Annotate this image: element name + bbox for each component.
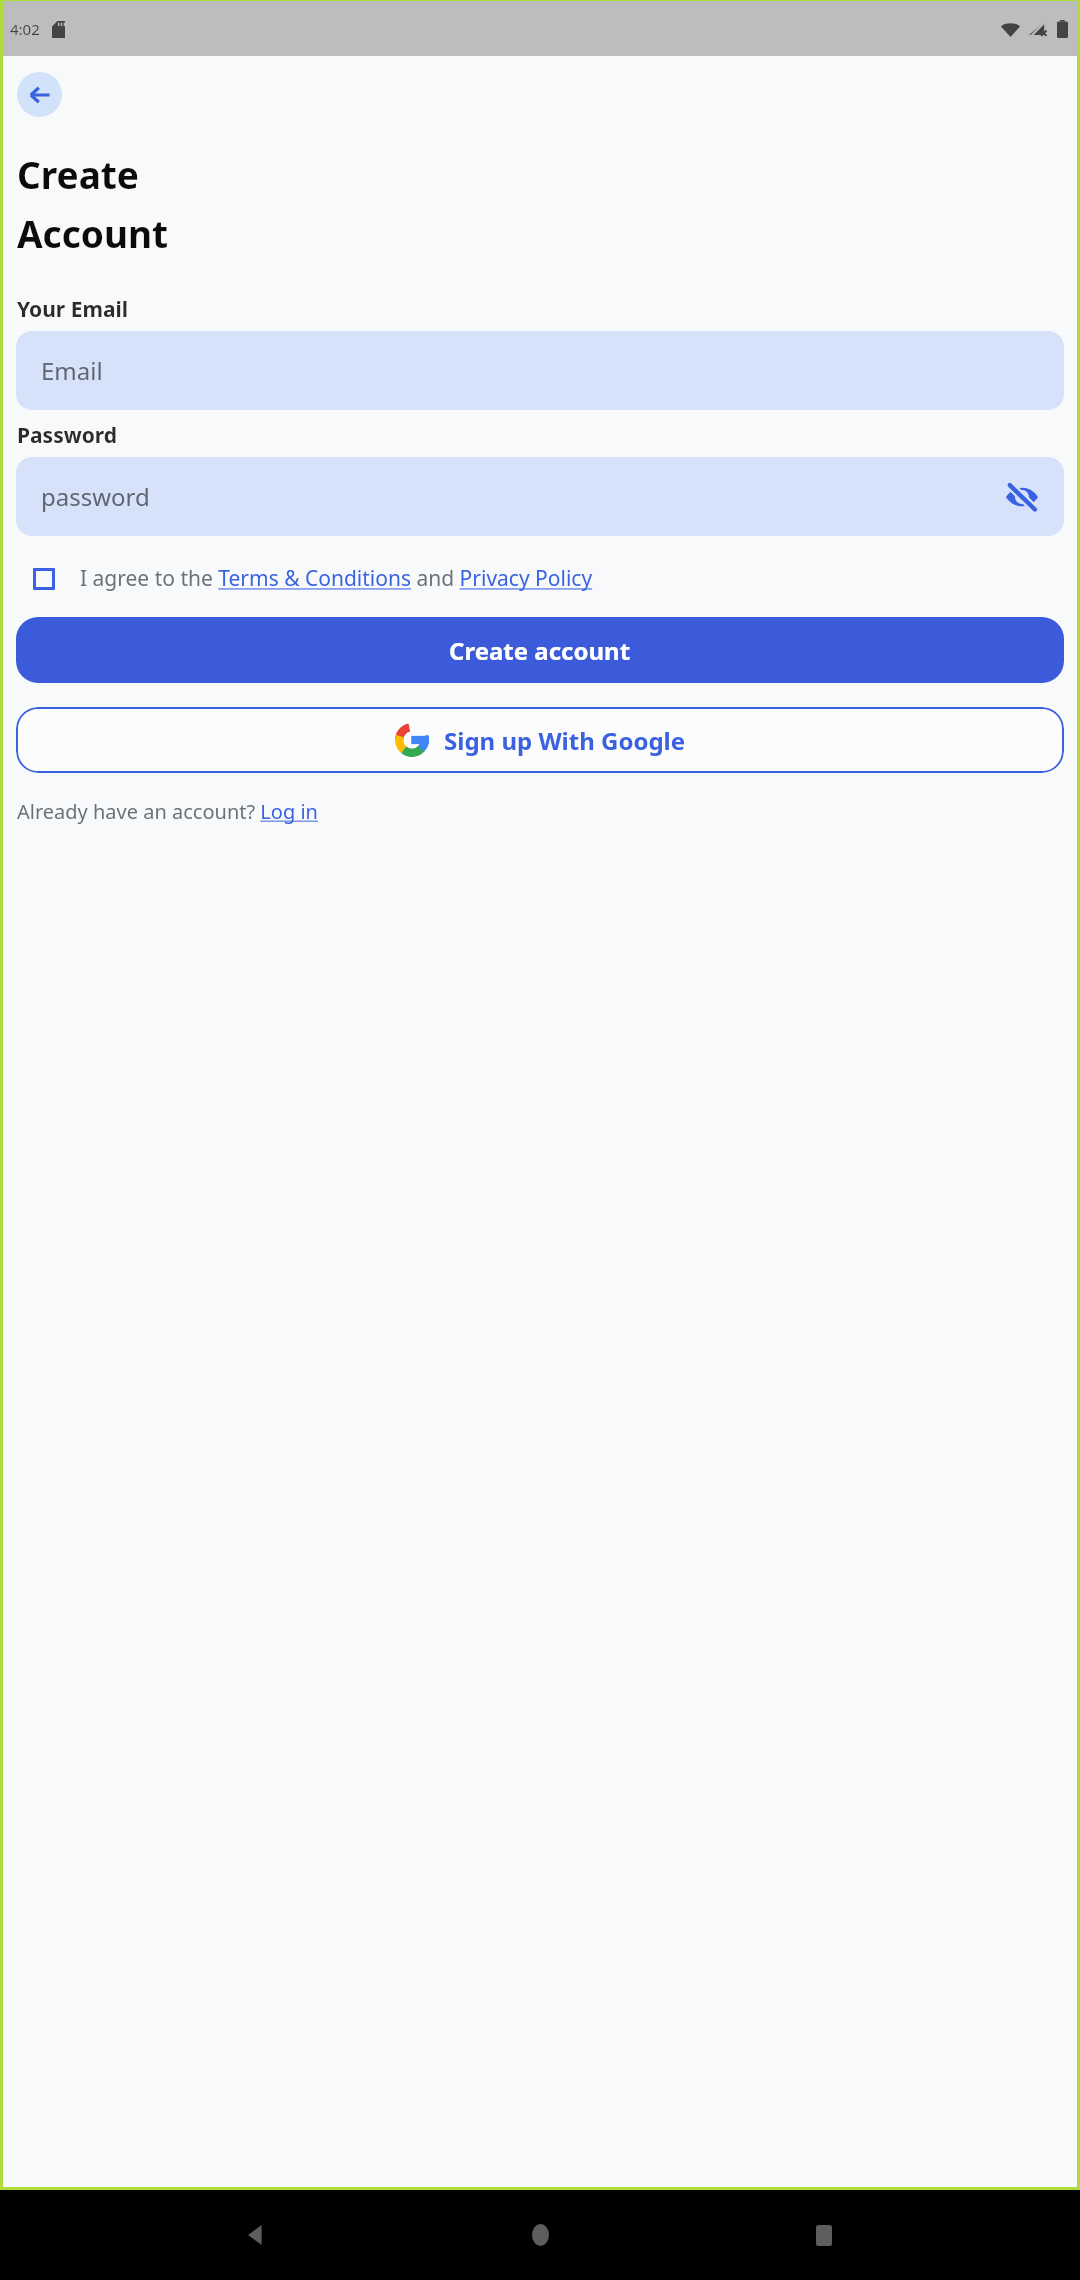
staticText: Account [17,208,169,258]
staticText: Password [17,421,118,450]
button[interactable]: Back [228,2207,284,2263]
staticText: password [41,480,150,513]
staticText: Email [41,354,103,387]
button[interactable]: Back [17,72,62,117]
staticText: Your Email [17,295,129,324]
staticText: 4:02 [10,19,40,39]
button[interactable]: Recent apps [796,2207,852,2263]
button[interactable]: Toggle password visibility [1002,477,1042,517]
button[interactable]: Home [512,2207,568,2263]
button[interactable]: password [16,457,1064,536]
staticText: I agree to the Terms & Conditions and Pr… [80,564,593,593]
button[interactable]: Create account [16,617,1064,683]
staticText: Sign up With Google [444,724,686,757]
button[interactable]: Already have an account? Log in [17,798,318,825]
staticText: Create account [449,634,631,667]
button[interactable]: Agree to terms checkbox [33,568,55,590]
staticText: Already have an account? Log in [17,798,318,825]
button[interactable]: Sign up With Google [16,707,1064,773]
staticText: Create [17,149,139,199]
button[interactable]: Email [16,331,1064,410]
button[interactable]: Agree to terms checkbox [16,564,1064,593]
